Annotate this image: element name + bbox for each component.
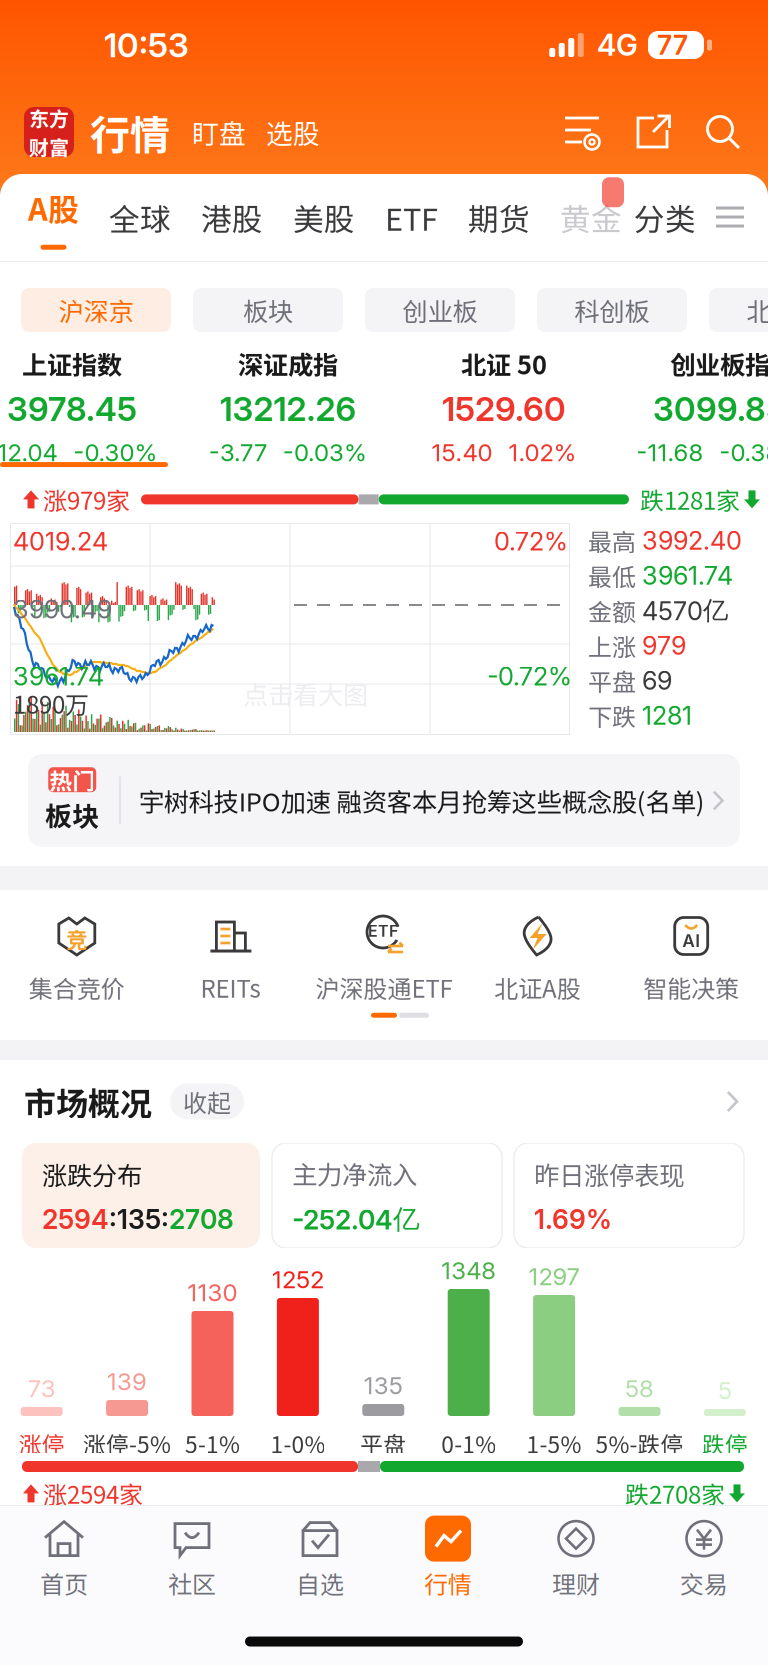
button[interactable]: 港股 <box>171 174 263 261</box>
staticText: 0-1% <box>441 1427 496 1460</box>
staticText: 深证成指 <box>238 345 338 382</box>
staticText: -0.38% <box>719 438 768 467</box>
staticText: -12.04 <box>0 438 57 467</box>
staticText: 昨日涨停表现 <box>534 1155 684 1192</box>
staticText: 集合竞价 <box>29 970 125 1005</box>
button[interactable]: 涨跌分布 <box>22 1143 260 1261</box>
staticText: 跌2708家 <box>625 1476 725 1511</box>
staticText: 1130 <box>187 1278 237 1307</box>
button[interactable]: 交易 <box>640 1516 768 1600</box>
button[interactable]: 社区 <box>128 1516 256 1600</box>
staticText: 10:53 <box>104 25 189 65</box>
staticText: -11.68 <box>636 438 703 467</box>
staticText: 跌1281家 <box>640 482 740 517</box>
staticText: 跌停 <box>702 1427 748 1460</box>
staticText: 行情 <box>424 1566 472 1600</box>
staticText: 58 <box>625 1374 654 1403</box>
button[interactable]: 理财 <box>512 1516 640 1600</box>
staticText: 上证指数 <box>22 345 122 382</box>
staticText: 东方 <box>29 103 69 132</box>
staticText: ETF <box>368 921 398 941</box>
button[interactable]: Open market overview <box>718 1087 746 1115</box>
staticText: 3961.74 <box>13 661 104 692</box>
button[interactable]: 北证A股 <box>461 912 614 1005</box>
staticText: -0.30% <box>73 438 157 467</box>
staticText: 69 <box>642 665 672 696</box>
staticText: 13212.26 <box>219 389 356 429</box>
staticText: 主力净流入 <box>292 1155 417 1192</box>
button[interactable]: 首页 <box>0 1516 128 1600</box>
staticText: 3992.40 <box>642 525 742 556</box>
button[interactable]: ETF <box>307 912 461 1005</box>
staticText: 1-0% <box>270 1427 325 1460</box>
staticText: 黄金 <box>560 195 622 240</box>
staticText: 北交所 <box>746 292 768 328</box>
button[interactable]: 全球 <box>79 174 171 261</box>
staticText: 1348 <box>441 1256 496 1285</box>
staticText: 板块 <box>45 795 99 834</box>
staticText: 金额 <box>588 593 636 628</box>
staticText: REITs <box>200 970 260 1005</box>
button[interactable]: 收起 <box>170 1083 244 1119</box>
staticText: 自选 <box>296 1566 344 1600</box>
button[interactable]: AI <box>614 912 768 1005</box>
staticText: 1281 <box>642 700 692 731</box>
staticText: :135: <box>109 1203 169 1235</box>
staticText: 最高 <box>588 523 636 558</box>
button[interactable]: 热门 <box>28 754 740 847</box>
staticText: 创业板指 <box>670 345 768 382</box>
button[interactable]: 昨日涨停表现 <box>514 1143 744 1248</box>
button[interactable]: Search <box>704 113 742 151</box>
button[interactable]: 北交所 <box>709 288 768 332</box>
staticText: 涨停-5% <box>83 1427 171 1460</box>
staticText: -0.72% <box>487 661 572 692</box>
button[interactable]: REITs <box>154 912 307 1005</box>
staticText: 期货 <box>468 195 530 240</box>
staticText: 热门 <box>49 763 95 796</box>
staticText: 3961.74 <box>642 560 733 591</box>
staticText: 1-5% <box>527 1427 582 1460</box>
staticText: 979 <box>642 630 686 661</box>
staticText: 选股 <box>266 113 320 151</box>
staticText: -252.04亿 <box>292 1202 420 1236</box>
staticText: 1.02% <box>508 438 576 467</box>
button[interactable]: 美股 <box>263 174 355 261</box>
staticText: 北证 50 <box>461 345 547 382</box>
staticText: 科创板 <box>574 292 649 328</box>
staticText: 涨停 <box>19 1427 65 1460</box>
button[interactable]: 主力净流入 <box>272 1143 502 1248</box>
staticText: 竞 <box>66 924 87 954</box>
staticText: 4570亿 <box>642 594 728 626</box>
button[interactable]: Share <box>634 113 672 151</box>
staticText: 平盘 <box>588 663 636 698</box>
staticText: 3099.83 <box>653 389 768 429</box>
staticText: -0.03% <box>283 438 367 467</box>
button[interactable]: 行情 <box>384 1516 512 1600</box>
staticText: 139 <box>107 1367 147 1396</box>
button[interactable]: 自选 <box>256 1516 384 1600</box>
staticText: 盯盘 <box>192 113 246 151</box>
button[interactable]: ETF <box>355 174 438 261</box>
button[interactable]: 分类 <box>622 174 696 261</box>
button[interactable]: 板块 <box>193 288 343 332</box>
staticText: 4019.24 <box>13 526 108 557</box>
staticText: 77 <box>657 29 688 61</box>
staticText: 4G <box>597 27 638 63</box>
button[interactable]: 创业板 <box>365 288 515 332</box>
button[interactable]: 沪深京 <box>21 288 171 332</box>
staticText: 美股 <box>293 195 355 240</box>
button[interactable]: All categories <box>716 174 744 261</box>
staticText: 最低 <box>588 558 636 593</box>
button[interactable]: 期货 <box>438 174 530 261</box>
staticText: 智能决策 <box>643 970 739 1005</box>
staticText: 3978.45 <box>7 389 137 429</box>
staticText: 5%-跌停 <box>595 1427 683 1460</box>
staticText: 分类 <box>634 195 696 240</box>
staticText: 理财 <box>552 1566 600 1600</box>
staticText: 2708 <box>169 1203 234 1235</box>
staticText: 港股 <box>201 195 263 240</box>
button[interactable]: 科创板 <box>537 288 687 332</box>
staticText: 行情 <box>90 103 170 161</box>
button[interactable]: Watchlist settings <box>564 113 602 151</box>
button[interactable]: 竞 <box>0 912 154 1005</box>
